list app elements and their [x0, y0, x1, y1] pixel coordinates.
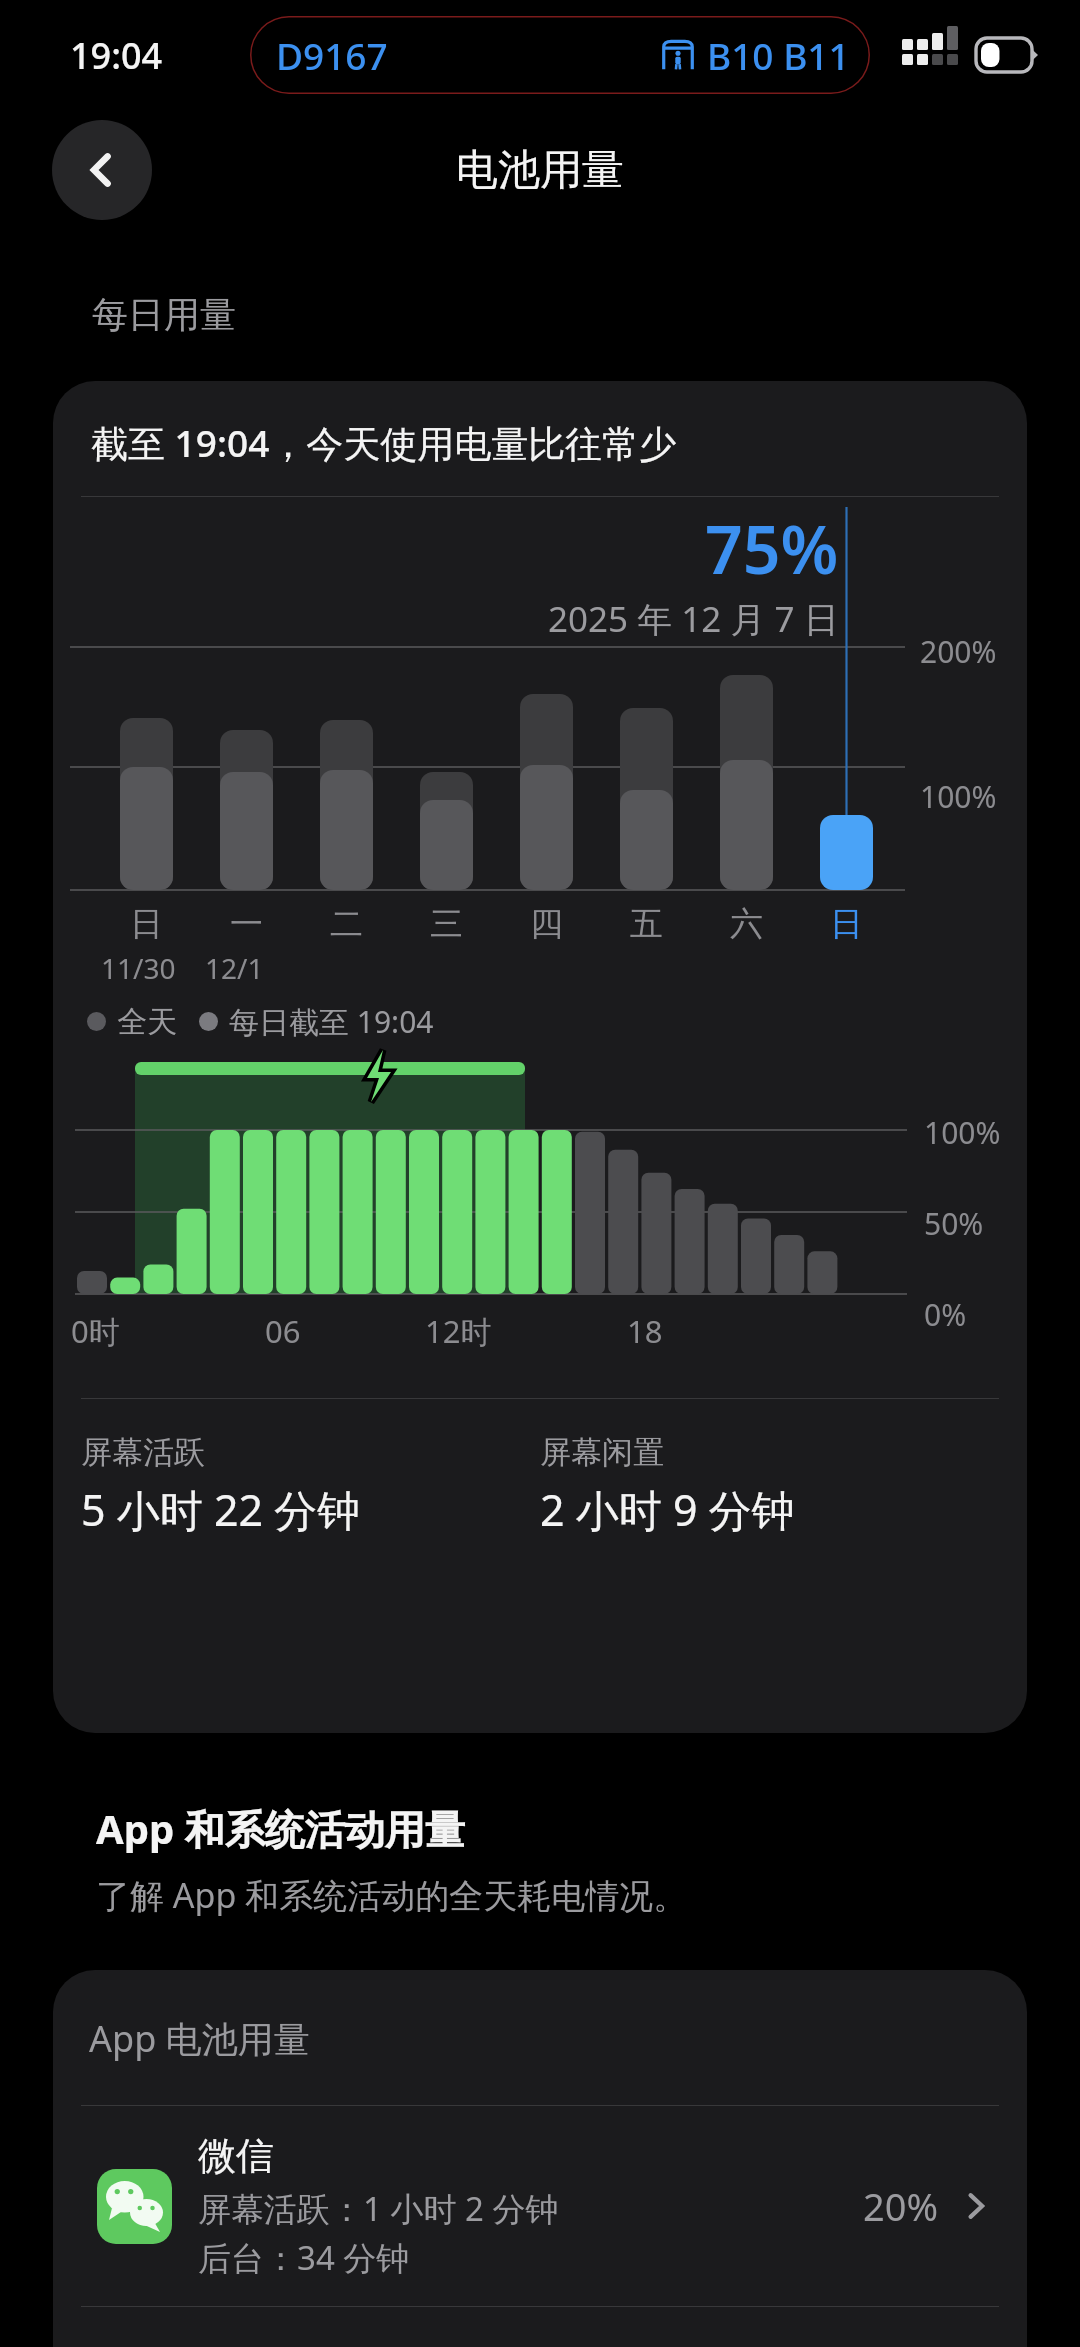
- staticText: 12时: [425, 1310, 492, 1352]
- staticText: 微信: [198, 2132, 274, 2180]
- staticText: 后台：34 分钟: [198, 2235, 410, 2280]
- staticText: App 电池用量: [89, 2014, 310, 2063]
- staticText: 11/30: [101, 949, 176, 987]
- staticText: 每日截至 19:04: [229, 1001, 434, 1042]
- button[interactable]: 截至 19:04，今天使用电量比往常少: [53, 381, 1027, 1733]
- staticText: 日: [830, 903, 863, 945]
- staticText: 截至 19:04，今天使用电量比往常少: [91, 417, 677, 468]
- staticText: 0%: [924, 1294, 967, 1335]
- staticText: App 和系统活动用量: [96, 1801, 465, 1856]
- staticText: 一: [230, 903, 263, 945]
- staticText: 五: [630, 903, 663, 945]
- staticText: 5 小时 22 分钟: [81, 1480, 361, 1539]
- staticText: 屏幕闲置: [540, 1433, 664, 1472]
- button[interactable]: 微信: [53, 2106, 1027, 2306]
- staticText: D9167: [276, 30, 388, 80]
- staticText: 六: [730, 903, 763, 945]
- staticText: 50%: [924, 1203, 984, 1244]
- staticText: B10 B11: [707, 30, 850, 80]
- staticText: 0时: [71, 1310, 120, 1352]
- staticText: 了解 App 和系统活动的全天耗电情况。: [96, 1872, 688, 1918]
- staticText: 屏幕活跃：1 小时 2 分钟: [198, 2186, 559, 2231]
- staticText: 18: [627, 1310, 663, 1352]
- staticText: 200%: [920, 631, 997, 672]
- staticText: 电池用量: [456, 144, 624, 197]
- staticText: 二: [330, 903, 363, 945]
- staticText: 三: [430, 903, 463, 945]
- staticText: 20%: [863, 2180, 939, 2232]
- staticText: 100%: [924, 1112, 1001, 1153]
- staticText: 四: [530, 903, 563, 945]
- button[interactable]: 返回: [52, 120, 152, 220]
- staticText: 75%: [705, 503, 839, 593]
- staticText: 100%: [920, 776, 997, 817]
- staticText: 每日用量: [92, 292, 236, 337]
- staticText: 2025 年 12 月 7 日: [548, 595, 839, 643]
- staticText: 12/1: [205, 949, 264, 987]
- staticText: 06: [265, 1310, 301, 1352]
- staticText: 2 小时 9 分钟: [540, 1480, 795, 1539]
- staticText: 屏幕活跃: [81, 1433, 205, 1472]
- staticText: 日: [130, 903, 163, 945]
- staticText: 全天: [117, 1003, 177, 1041]
- staticText: 19:04: [70, 31, 163, 80]
